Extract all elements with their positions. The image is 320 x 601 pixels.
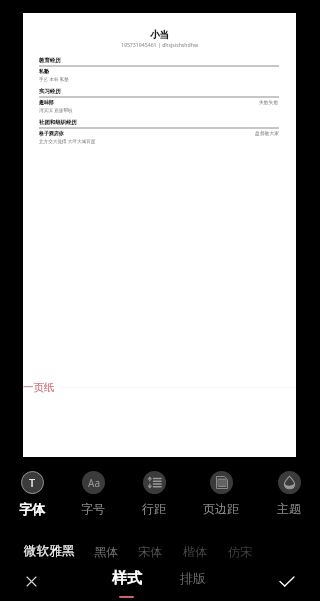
button[interactable]: 黑体 — [76, 539, 136, 563]
staticText: 黑体 — [94, 544, 118, 559]
button[interactable]: Confirm — [275, 569, 299, 593]
button[interactable]: 样式 — [107, 566, 146, 590]
staticText: 私塾 — [39, 68, 49, 74]
staticText: 趣味部 — [39, 99, 54, 105]
staticText: 仿宋 — [228, 544, 252, 559]
staticText: 小当 — [23, 29, 296, 41]
staticText: 195731945461 | dhsjsishshdhw — [23, 41, 296, 48]
staticText: 格子酒店你 — [39, 130, 64, 136]
staticText: 微软雅黑 — [24, 543, 75, 559]
staticText: 宋体 — [138, 544, 162, 559]
staticText: 主题 — [277, 501, 301, 516]
staticText: 页边距 — [203, 501, 239, 516]
button[interactable]: 排版 — [174, 566, 211, 590]
button[interactable]: 宋体 — [120, 539, 180, 563]
staticText: 排版 — [180, 570, 206, 586]
staticText: 字号 — [81, 501, 105, 516]
staticText: 北方交大觉得 大坪大城百度 — [39, 138, 96, 144]
staticText: 字体 — [19, 501, 45, 517]
staticText: 楷体 — [183, 544, 207, 559]
staticText: 一页纸 — [23, 381, 55, 394]
button[interactable]: Page margin — [195, 466, 247, 516]
staticText: 行距 — [142, 501, 166, 516]
button[interactable]: Font — [6, 466, 58, 516]
staticText: 失散失散 — [259, 99, 279, 105]
staticText: 盘督教大家 — [255, 130, 279, 136]
staticText: 实习经历 — [39, 88, 61, 95]
button[interactable]: Font size — [67, 466, 119, 516]
staticText: 社团和组织经历 — [39, 119, 77, 126]
button[interactable]: Theme — [263, 466, 315, 516]
staticText: 样式 — [112, 569, 142, 588]
button[interactable]: Line spacing — [128, 466, 180, 516]
button[interactable]: 楷体 — [165, 539, 225, 563]
staticText: 教育经历 — [39, 57, 61, 64]
staticText: Aa — [88, 476, 100, 490]
staticText: 湾滨滨 直缱帮啦 — [39, 107, 73, 113]
button[interactable]: 微软雅黑 — [19, 539, 79, 563]
button[interactable]: 仿宋 — [210, 539, 270, 563]
staticText: T — [29, 475, 36, 490]
staticText: 手艺 本科 私塾 — [39, 76, 69, 82]
button[interactable]: Close — [19, 569, 43, 593]
